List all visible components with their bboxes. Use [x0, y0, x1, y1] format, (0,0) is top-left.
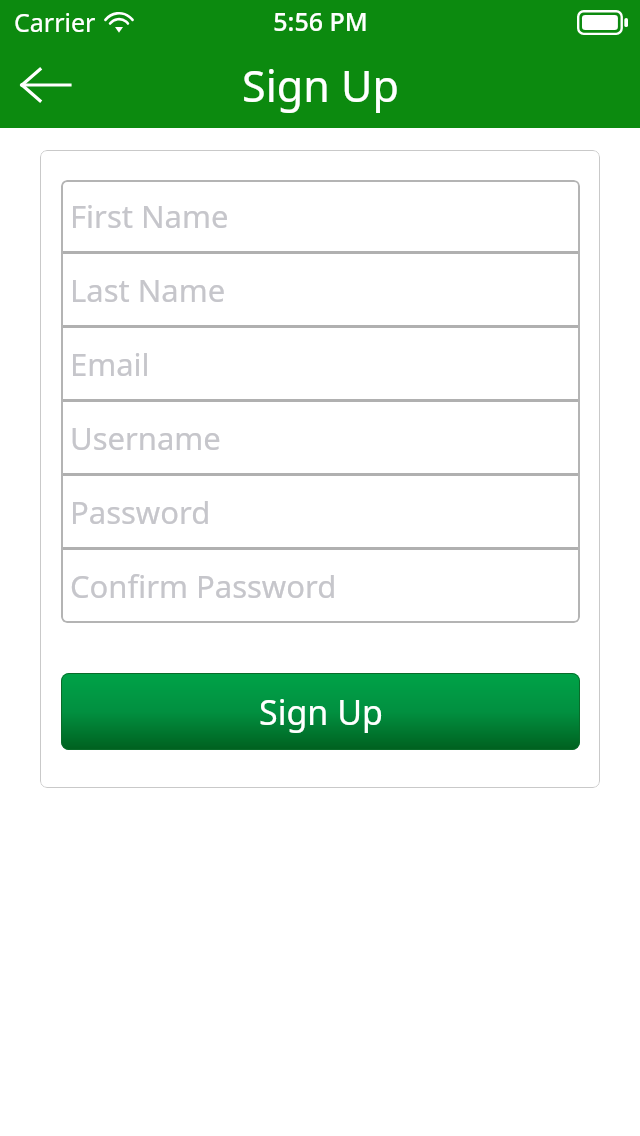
button[interactable]: Sign Up	[61, 673, 580, 750]
button[interactable]: Username	[61, 402, 580, 473]
staticText: Username	[70, 417, 221, 459]
staticText: Email	[70, 343, 150, 385]
staticText: First Name	[70, 195, 229, 237]
button[interactable]: Password	[61, 476, 580, 547]
button[interactable]: Last Name	[61, 254, 580, 325]
button[interactable]: First Name	[61, 180, 580, 251]
staticText: Password	[70, 491, 211, 533]
staticText: Sign Up	[259, 689, 383, 735]
staticText: Carrier	[14, 5, 96, 39]
staticText: Sign Up	[242, 56, 399, 115]
staticText: Confirm Password	[70, 565, 337, 607]
staticText: 5:56 PM	[273, 4, 368, 38]
button[interactable]: Email	[61, 328, 580, 399]
button[interactable]: Back	[10, 54, 82, 116]
staticText: Last Name	[70, 269, 226, 311]
button[interactable]: Confirm Password	[61, 550, 580, 621]
